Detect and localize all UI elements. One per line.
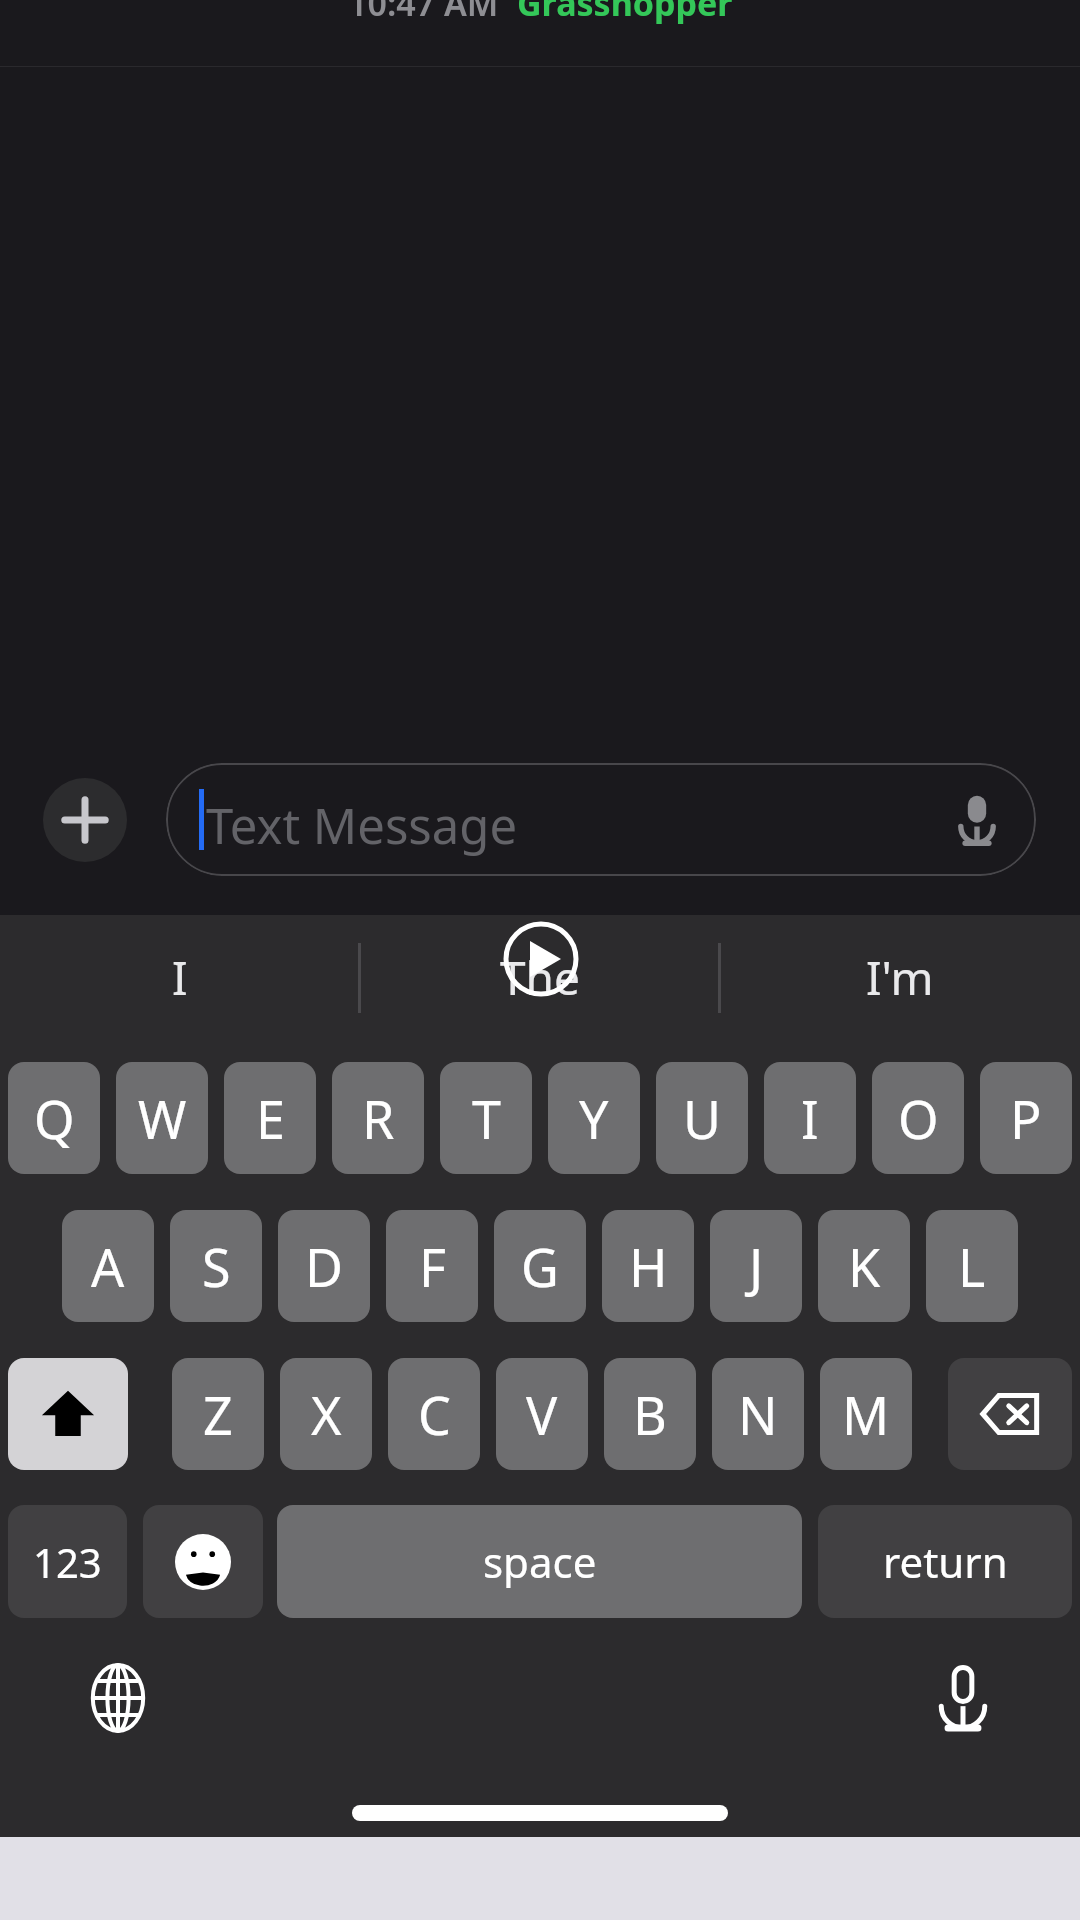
button[interactable]: space — [277, 1505, 802, 1618]
staticText: I'm — [866, 946, 934, 1009]
staticText: Q — [34, 1083, 75, 1154]
staticText: Grasshopper — [517, 0, 733, 26]
button[interactable]: Y — [548, 1062, 640, 1174]
staticText: P — [1010, 1083, 1042, 1154]
button[interactable]: I — [0, 915, 360, 1040]
button[interactable]: M — [820, 1358, 912, 1470]
button[interactable]: Dictation — [925, 1660, 1001, 1736]
staticText: D — [305, 1231, 343, 1302]
button[interactable]: G — [494, 1210, 586, 1322]
button[interactable]: Add attachment — [43, 778, 127, 862]
staticText: R — [362, 1083, 395, 1154]
staticText: A — [91, 1231, 125, 1302]
button[interactable]: N — [712, 1358, 804, 1470]
staticText: E — [256, 1083, 285, 1154]
button[interactable]: Text Message — [166, 763, 1036, 876]
button[interactable]: Q — [8, 1062, 100, 1174]
staticText: H — [629, 1231, 668, 1302]
staticText: N — [738, 1379, 778, 1450]
staticText: I — [801, 1083, 819, 1154]
staticText: L — [958, 1231, 986, 1302]
button[interactable]: O — [872, 1062, 964, 1174]
staticText: Y — [579, 1083, 609, 1154]
button[interactable]: R — [332, 1062, 424, 1174]
staticText: I — [172, 946, 188, 1009]
staticText: 123 — [33, 1535, 102, 1589]
button[interactable]: Z — [172, 1358, 264, 1470]
button[interactable]: H — [602, 1210, 694, 1322]
button[interactable]: W — [116, 1062, 208, 1174]
staticText: Z — [203, 1379, 233, 1450]
staticText: U — [683, 1083, 722, 1154]
button[interactable]: K — [818, 1210, 910, 1322]
staticText: W — [138, 1083, 187, 1154]
staticText: F — [419, 1231, 446, 1302]
button[interactable]: C — [388, 1358, 480, 1470]
staticText: The — [500, 946, 580, 1009]
staticText: V — [526, 1379, 558, 1450]
button[interactable]: Shift — [8, 1358, 128, 1470]
button[interactable]: return — [818, 1505, 1072, 1618]
button[interactable]: P — [980, 1062, 1072, 1174]
button[interactable]: Change keyboard language — [80, 1660, 156, 1736]
button[interactable]: B — [604, 1358, 696, 1470]
button[interactable]: D — [278, 1210, 370, 1322]
button[interactable]: 123 — [8, 1505, 127, 1618]
staticText: B — [633, 1379, 667, 1450]
staticText: return — [883, 1533, 1008, 1590]
button[interactable]: Play — [503, 921, 579, 997]
staticText: G — [521, 1231, 559, 1302]
button[interactable]: Dictate message — [948, 791, 1006, 849]
button[interactable]: F — [386, 1210, 478, 1322]
staticText: T — [472, 1083, 501, 1154]
button[interactable]: E — [224, 1062, 316, 1174]
staticText: S — [202, 1231, 231, 1302]
button[interactable]: Backspace — [948, 1358, 1072, 1470]
button[interactable]: I'm — [720, 915, 1080, 1040]
staticText: K — [848, 1231, 881, 1302]
staticText: J — [749, 1231, 764, 1302]
button[interactable]: Emoji — [143, 1505, 263, 1618]
staticText: C — [418, 1379, 451, 1450]
button[interactable]: J — [710, 1210, 802, 1322]
button[interactable]: L — [926, 1210, 1018, 1322]
button[interactable]: S — [170, 1210, 262, 1322]
button[interactable]: U — [656, 1062, 748, 1174]
staticText: M — [842, 1379, 890, 1450]
button[interactable]: I — [764, 1062, 856, 1174]
button[interactable]: T — [440, 1062, 532, 1174]
staticText: X — [311, 1379, 342, 1450]
button[interactable]: The — [360, 915, 720, 1040]
button[interactable]: X — [280, 1358, 372, 1470]
button[interactable]: A — [62, 1210, 154, 1322]
staticText: O — [898, 1083, 939, 1154]
button[interactable]: V — [496, 1358, 588, 1470]
staticText: Text Message — [206, 792, 518, 859]
staticText: 10:47 AM — [348, 0, 517, 26]
staticText: space — [483, 1533, 597, 1590]
